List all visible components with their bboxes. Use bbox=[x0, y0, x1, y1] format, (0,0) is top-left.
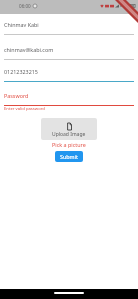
staticText: chinmay@kabi.com bbox=[4, 46, 54, 52]
button[interactable]: Upload Image bbox=[41, 118, 97, 140]
staticText: Upload Image bbox=[52, 131, 86, 138]
staticText: Password bbox=[4, 92, 29, 98]
staticText: Chinmay Kabi bbox=[4, 21, 39, 27]
button[interactable]: Submit bbox=[55, 151, 83, 162]
staticText: Submit bbox=[60, 153, 78, 160]
staticText: 06:00 bbox=[19, 3, 31, 9]
staticText: 01212323215 bbox=[4, 68, 38, 74]
staticText: Enter valid password bbox=[4, 106, 45, 112]
staticText: Pick a picture bbox=[52, 141, 86, 148]
staticText: 80% bbox=[120, 3, 129, 9]
